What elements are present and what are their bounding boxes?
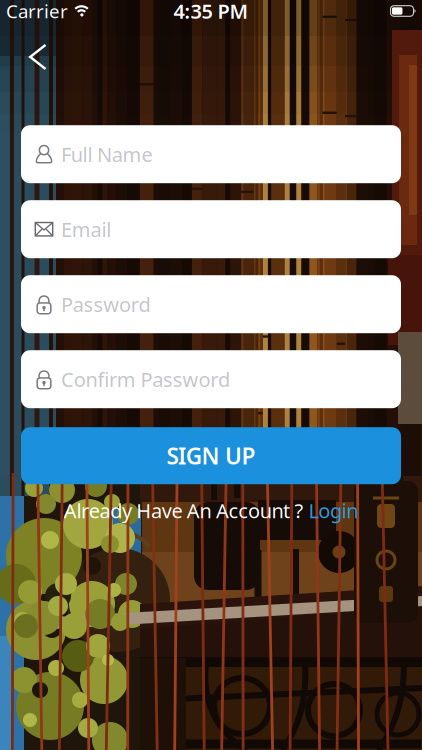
button[interactable]: Email — [21, 200, 401, 258]
staticText: SIGN UP — [166, 441, 256, 471]
staticText: Login — [308, 497, 358, 524]
button[interactable]: Confirm Password — [21, 350, 401, 408]
button[interactable]: SIGN UP — [21, 427, 401, 484]
button[interactable]: Password — [21, 275, 401, 333]
staticText: Full Name — [61, 141, 152, 167]
button[interactable]: Full Name — [21, 125, 401, 183]
staticText: Carrier — [6, 0, 68, 23]
button[interactable]: Back — [19, 34, 57, 80]
staticText: 4:35 PM — [173, 0, 248, 24]
staticText: Email — [61, 216, 111, 242]
staticText: Confirm Password — [61, 366, 230, 392]
button[interactable]: Login — [308, 497, 358, 524]
staticText: Already Have An Account ? — [64, 497, 303, 524]
staticText: Password — [61, 291, 151, 317]
